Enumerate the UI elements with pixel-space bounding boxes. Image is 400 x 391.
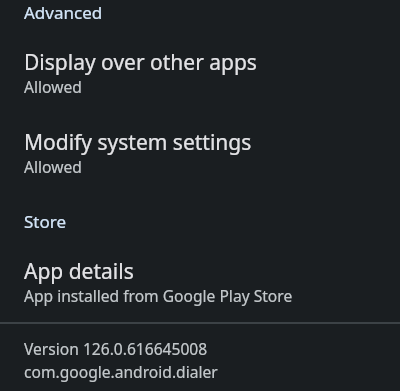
staticText: App details [24,257,134,286]
staticText: Allowed [24,76,82,97]
staticText: App installed from Google Play Store [24,285,293,306]
button[interactable]: Modify system settings [0,120,400,186]
button[interactable]: App details [0,248,400,314]
button[interactable]: Display over other apps [0,40,400,106]
staticText: Display over other apps [24,48,257,77]
staticText: Version 126.0.616645008 [24,338,208,359]
staticText: Modify system settings [24,128,252,157]
staticText: Store [24,210,67,233]
staticText: Allowed [24,156,82,177]
staticText: Advanced [24,1,103,24]
staticText: com.google.android.dialer [24,361,218,382]
